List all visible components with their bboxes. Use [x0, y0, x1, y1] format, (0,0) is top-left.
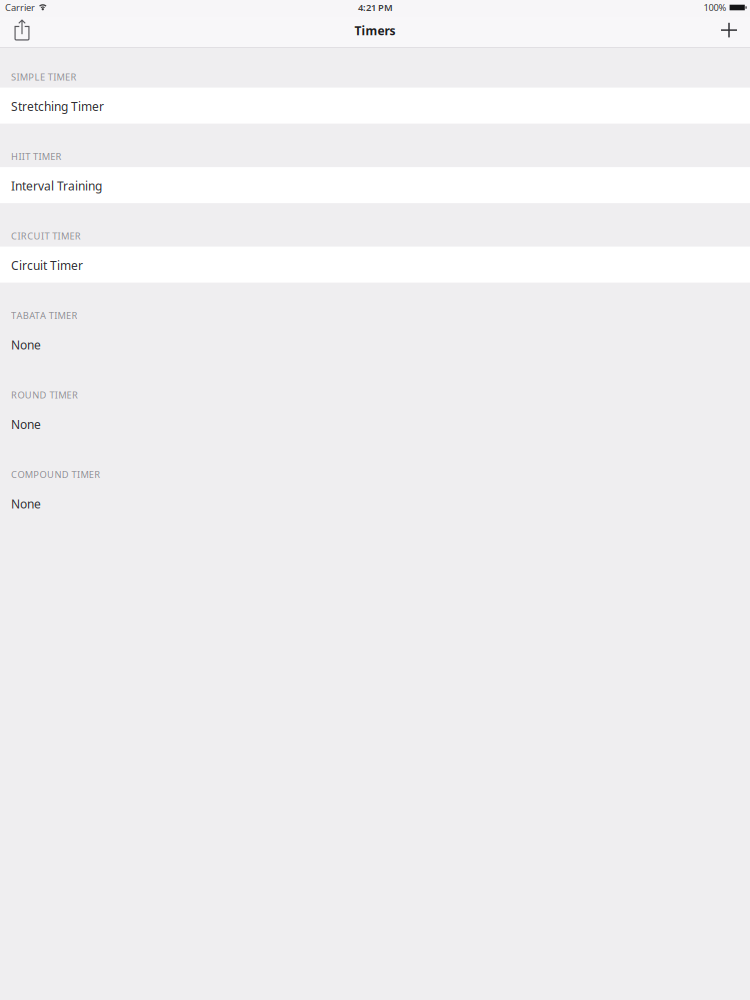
- staticText: Interval Training: [11, 178, 102, 194]
- staticText: HIIT TIMER: [11, 150, 62, 163]
- staticText: Stretching Timer: [11, 98, 104, 114]
- staticText: CIRCUIT TIMER: [11, 230, 81, 242]
- staticText: Circuit Timer: [11, 257, 83, 273]
- staticText: 100%: [703, 1, 726, 14]
- button[interactable]: Interval Training: [0, 167, 750, 203]
- staticText: 4:21 PM: [358, 1, 393, 14]
- staticText: TABATA TIMER: [11, 309, 77, 322]
- staticText: None: [11, 337, 41, 353]
- staticText: COMPOUND TIMER: [11, 468, 100, 481]
- staticText: Timers: [354, 22, 395, 38]
- button[interactable]: Circuit Timer: [0, 247, 750, 283]
- staticText: None: [11, 416, 41, 432]
- button[interactable]: Stretching Timer: [0, 88, 750, 124]
- button[interactable]: Share: [0, 17, 44, 47]
- staticText: None: [11, 496, 41, 512]
- staticText: ROUND TIMER: [11, 389, 78, 401]
- button[interactable]: Add timer: [708, 17, 750, 47]
- staticText: SIMPLE TIMER: [11, 71, 76, 83]
- staticText: Carrier: [5, 1, 35, 14]
